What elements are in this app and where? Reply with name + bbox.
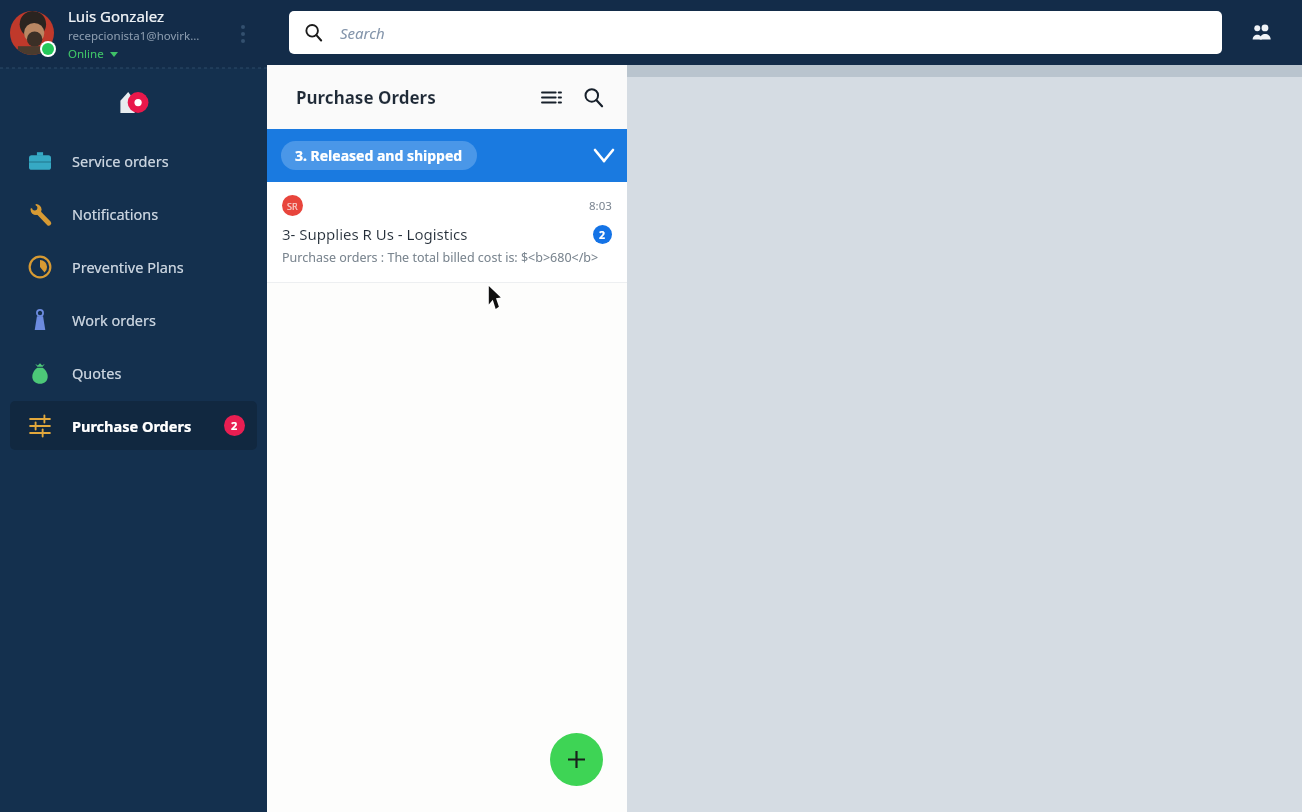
staticText: Purchase orders : The total billed cost …: [282, 249, 599, 266]
staticText: 3- Supplies R Us - Logistics: [282, 224, 593, 244]
button[interactable]: Search: [289, 11, 1222, 54]
staticText: Luis Gonzalez: [68, 6, 165, 26]
staticText: 2: [231, 418, 238, 433]
staticText: Work orders: [72, 310, 245, 330]
button[interactable]: 3. Released and shipped: [267, 129, 627, 182]
button[interactable]: Search list: [575, 79, 611, 115]
button[interactable]: Contacts: [1242, 14, 1280, 52]
staticText: Purchase Orders: [296, 86, 533, 109]
staticText: Online: [68, 46, 104, 62]
staticText: Preventive Plans: [72, 257, 245, 277]
button[interactable]: Luis Gonzalez: [0, 0, 267, 68]
button[interactable]: Notifications: [10, 189, 257, 238]
button[interactable]: Quotes: [10, 348, 257, 397]
button[interactable]: Purchase Orders: [10, 401, 257, 450]
staticText: Purchase Orders: [72, 416, 224, 436]
button[interactable]: Add purchase order: [550, 733, 603, 786]
staticText: Notifications: [72, 204, 245, 224]
button[interactable]: More options: [227, 18, 259, 50]
button[interactable]: Preventive Plans: [10, 242, 257, 291]
staticText: recepcionista1@hovirk…: [68, 28, 200, 44]
button[interactable]: SR: [267, 182, 627, 282]
staticText: Service orders: [72, 151, 245, 171]
staticText: Search: [340, 23, 385, 43]
staticText: 8:03: [589, 198, 612, 214]
staticText: 3. Released and shipped: [295, 146, 463, 165]
button[interactable]: Sort: [533, 79, 569, 115]
button[interactable]: Service orders: [10, 136, 257, 185]
staticText: Quotes: [72, 363, 245, 383]
staticText: 2: [599, 228, 606, 242]
staticText: SR: [287, 200, 298, 212]
button[interactable]: Work orders: [10, 295, 257, 344]
